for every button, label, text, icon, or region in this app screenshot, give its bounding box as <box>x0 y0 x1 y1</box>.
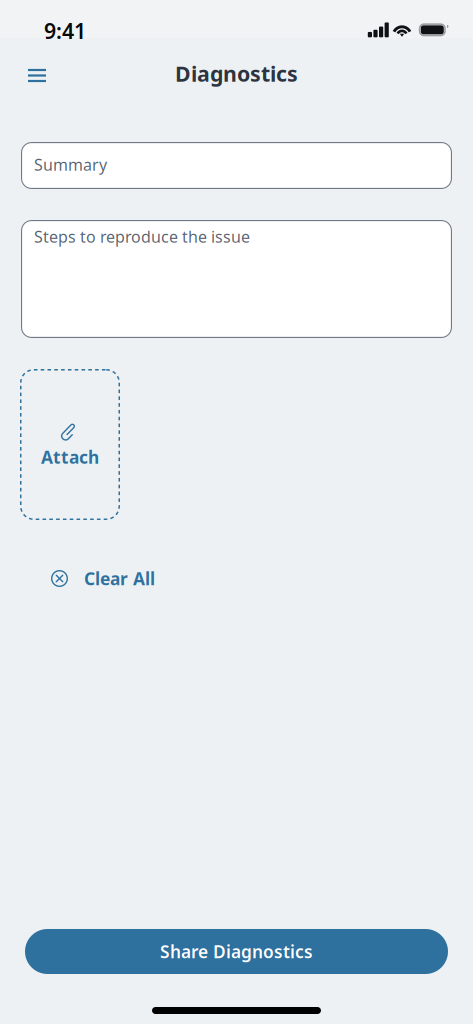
staticText: Share Diagnostics <box>160 940 313 963</box>
button[interactable]: Attach <box>20 369 120 520</box>
button[interactable]: Clear All <box>51 567 155 590</box>
staticText: 9:41 <box>44 17 86 45</box>
staticText: Clear All <box>84 567 155 590</box>
button[interactable]: Share Diagnostics <box>25 929 448 974</box>
staticText: Diagnostics <box>175 59 298 88</box>
staticText: Steps to reproduce the issue <box>34 226 250 247</box>
staticText: Summary <box>34 154 107 175</box>
staticText: Attach <box>41 445 99 468</box>
button[interactable]: Menu <box>15 53 59 97</box>
